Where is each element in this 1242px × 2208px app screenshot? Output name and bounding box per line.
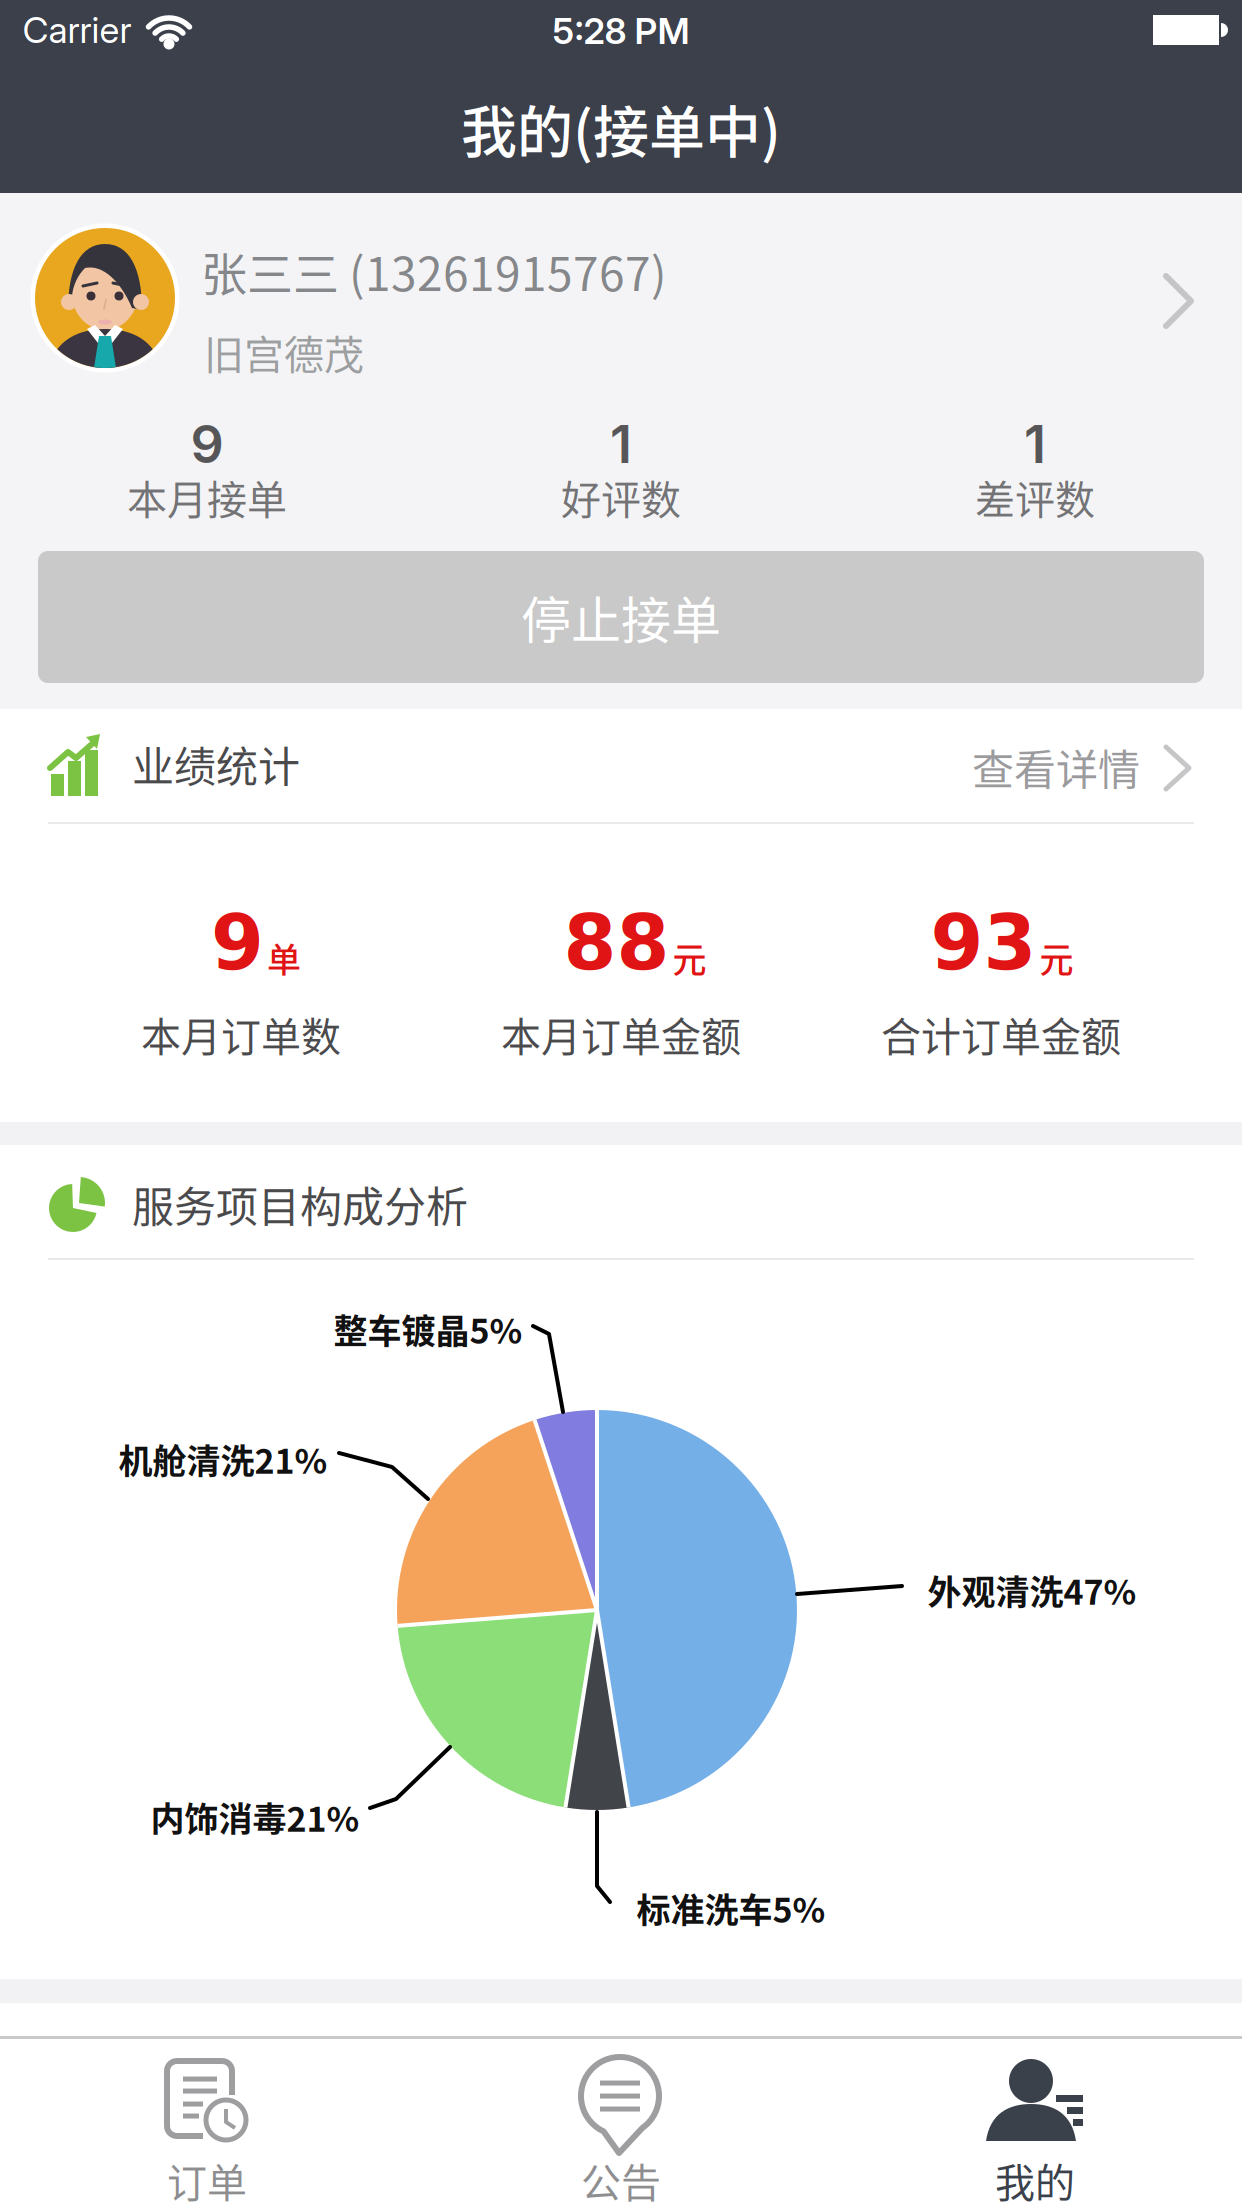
staticText: 9 <box>190 412 223 475</box>
staticText: 88 <box>563 899 669 987</box>
staticText: 5:28 PM <box>552 9 689 53</box>
staticText: 整车镀晶5% <box>333 1304 522 1354</box>
staticText: 服务项目构成分析 <box>132 1174 468 1234</box>
staticText: 本月接单 <box>127 468 287 526</box>
staticText: 我的(接单中) <box>461 87 781 169</box>
staticText: 停止接单 <box>521 581 721 653</box>
staticText: 机舱清洗21% <box>118 1434 327 1484</box>
staticText: 我的 <box>995 2151 1075 2208</box>
staticText: 查看详情 <box>972 737 1140 797</box>
staticText: 旧宫德茂 <box>204 323 364 381</box>
staticText: 本月订单数 <box>141 1005 341 1063</box>
staticText: 合计订单金额 <box>881 1005 1121 1063</box>
staticText: 9 <box>211 899 264 987</box>
staticText: 1 <box>1024 412 1046 475</box>
staticText: 差评数 <box>975 468 1095 526</box>
staticText: 内饰消毒21% <box>150 1792 359 1842</box>
staticText: 93 <box>930 899 1036 987</box>
staticText: 1 <box>610 412 632 475</box>
staticText: 本月订单金额 <box>501 1005 741 1063</box>
staticText: 单 <box>267 933 301 982</box>
staticText: Carrier <box>22 8 131 52</box>
staticText: 订单 <box>167 2151 247 2208</box>
staticText: 好评数 <box>561 468 681 526</box>
staticText: 元 <box>1039 933 1073 982</box>
staticText: 张三三 (13261915767) <box>201 238 667 304</box>
staticText: 元 <box>672 933 706 982</box>
staticText: 标准洗车5% <box>636 1883 825 1933</box>
staticText: 公告 <box>581 2151 661 2208</box>
staticText: 业绩统计 <box>132 734 300 794</box>
staticText: 外观清洗47% <box>927 1565 1136 1615</box>
